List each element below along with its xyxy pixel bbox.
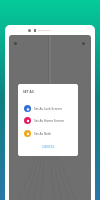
staticText: Set As Home Screen bbox=[34, 119, 64, 123]
staticText: Set As Both bbox=[34, 132, 52, 136]
staticText: SET AS bbox=[23, 90, 34, 94]
button[interactable]: CANCEL bbox=[18, 142, 78, 151]
staticText: CANCEL bbox=[42, 145, 55, 149]
button[interactable]: Set As Both bbox=[18, 128, 78, 139]
button[interactable]: Set As Home Screen bbox=[18, 115, 78, 126]
staticText: Set As Lock Screen bbox=[34, 107, 62, 111]
button[interactable]: Set As Lock Screen bbox=[18, 103, 78, 114]
